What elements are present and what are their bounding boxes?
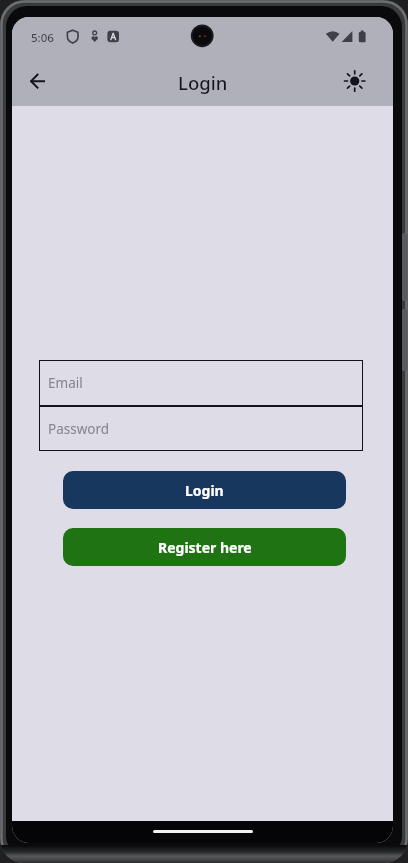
button[interactable]: Password xyxy=(39,406,363,451)
staticText: Register here xyxy=(158,538,252,557)
button[interactable]: Register here xyxy=(63,528,346,566)
button[interactable]: Login xyxy=(63,471,346,509)
staticText: 5:06 xyxy=(31,30,54,46)
staticText: Login xyxy=(178,70,228,95)
staticText: Email xyxy=(48,374,83,392)
staticText: Password xyxy=(48,420,110,438)
button[interactable]: Email xyxy=(39,360,363,406)
staticText: Login xyxy=(185,481,224,500)
button[interactable] xyxy=(331,58,379,106)
button[interactable] xyxy=(14,58,62,106)
